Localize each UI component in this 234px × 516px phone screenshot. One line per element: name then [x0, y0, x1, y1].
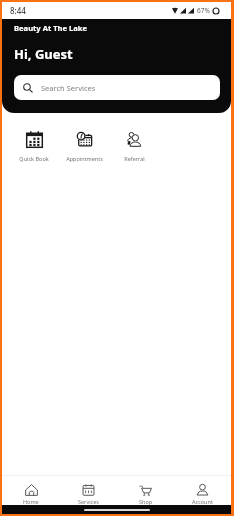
staticText: Home — [23, 498, 39, 505]
button[interactable]: Appointments — [59, 131, 109, 162]
staticText: Beauty At The Lake — [14, 23, 88, 33]
button[interactable]: Services — [60, 476, 117, 505]
button[interactable]: Quick Book — [9, 131, 59, 162]
staticText: 8:44 — [10, 5, 26, 16]
staticText: 67% — [197, 6, 210, 15]
staticText: Services — [78, 498, 99, 505]
button[interactable]: Referral — [109, 131, 159, 162]
button[interactable]: Account — [174, 476, 231, 505]
staticText: Shop — [139, 498, 153, 505]
button[interactable]: Home — [2, 476, 60, 505]
staticText: Search Services — [41, 83, 96, 93]
staticText: Appointments — [66, 155, 103, 162]
button[interactable]: Search Services — [14, 75, 220, 100]
button[interactable]: Shop — [117, 476, 174, 505]
staticText: Quick Book — [19, 155, 49, 162]
staticText: Hi, Guest — [14, 45, 73, 63]
staticText: Account — [192, 498, 213, 505]
staticText: Referral — [124, 155, 145, 162]
